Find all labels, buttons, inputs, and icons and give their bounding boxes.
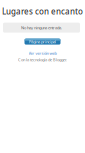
staticText: Página principal [29,39,56,44]
staticText: Ver versión web [28,51,56,56]
button[interactable]: Página principal [24,39,60,45]
staticText: Con la tecnología de Blogger. [18,57,67,62]
staticText: No hay ninguna entrada. [21,25,62,30]
staticText: Lugares con encanto [2,6,83,17]
button[interactable]: Ver versión web [28,51,56,56]
